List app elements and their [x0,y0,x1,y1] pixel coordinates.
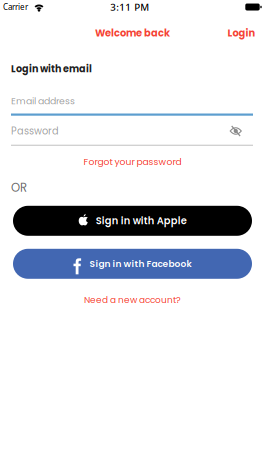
staticText: Welcome back [95,26,170,40]
button[interactable]: Sign in with Apple [13,206,252,236]
staticText: OR [11,180,27,196]
staticText: Login with email [11,62,92,76]
staticText: Forgot your password [83,155,181,168]
staticText: Carrier [3,2,28,12]
button[interactable]: Show password [229,125,242,137]
staticText: Sign in with Apple [96,214,187,228]
button[interactable]: Forgot your password [0,157,265,167]
staticText: Sign in with Facebook [89,257,191,270]
staticText: Need a new account? [84,293,181,306]
staticText: Password [11,124,59,138]
staticText: 3:11 PM [110,0,149,14]
button[interactable]: Need a new account? [0,295,265,305]
staticText: Login [227,26,255,40]
staticText: Email address [11,94,75,108]
button[interactable]: Sign in with Facebook [13,249,252,279]
button[interactable]: Login [227,26,255,40]
